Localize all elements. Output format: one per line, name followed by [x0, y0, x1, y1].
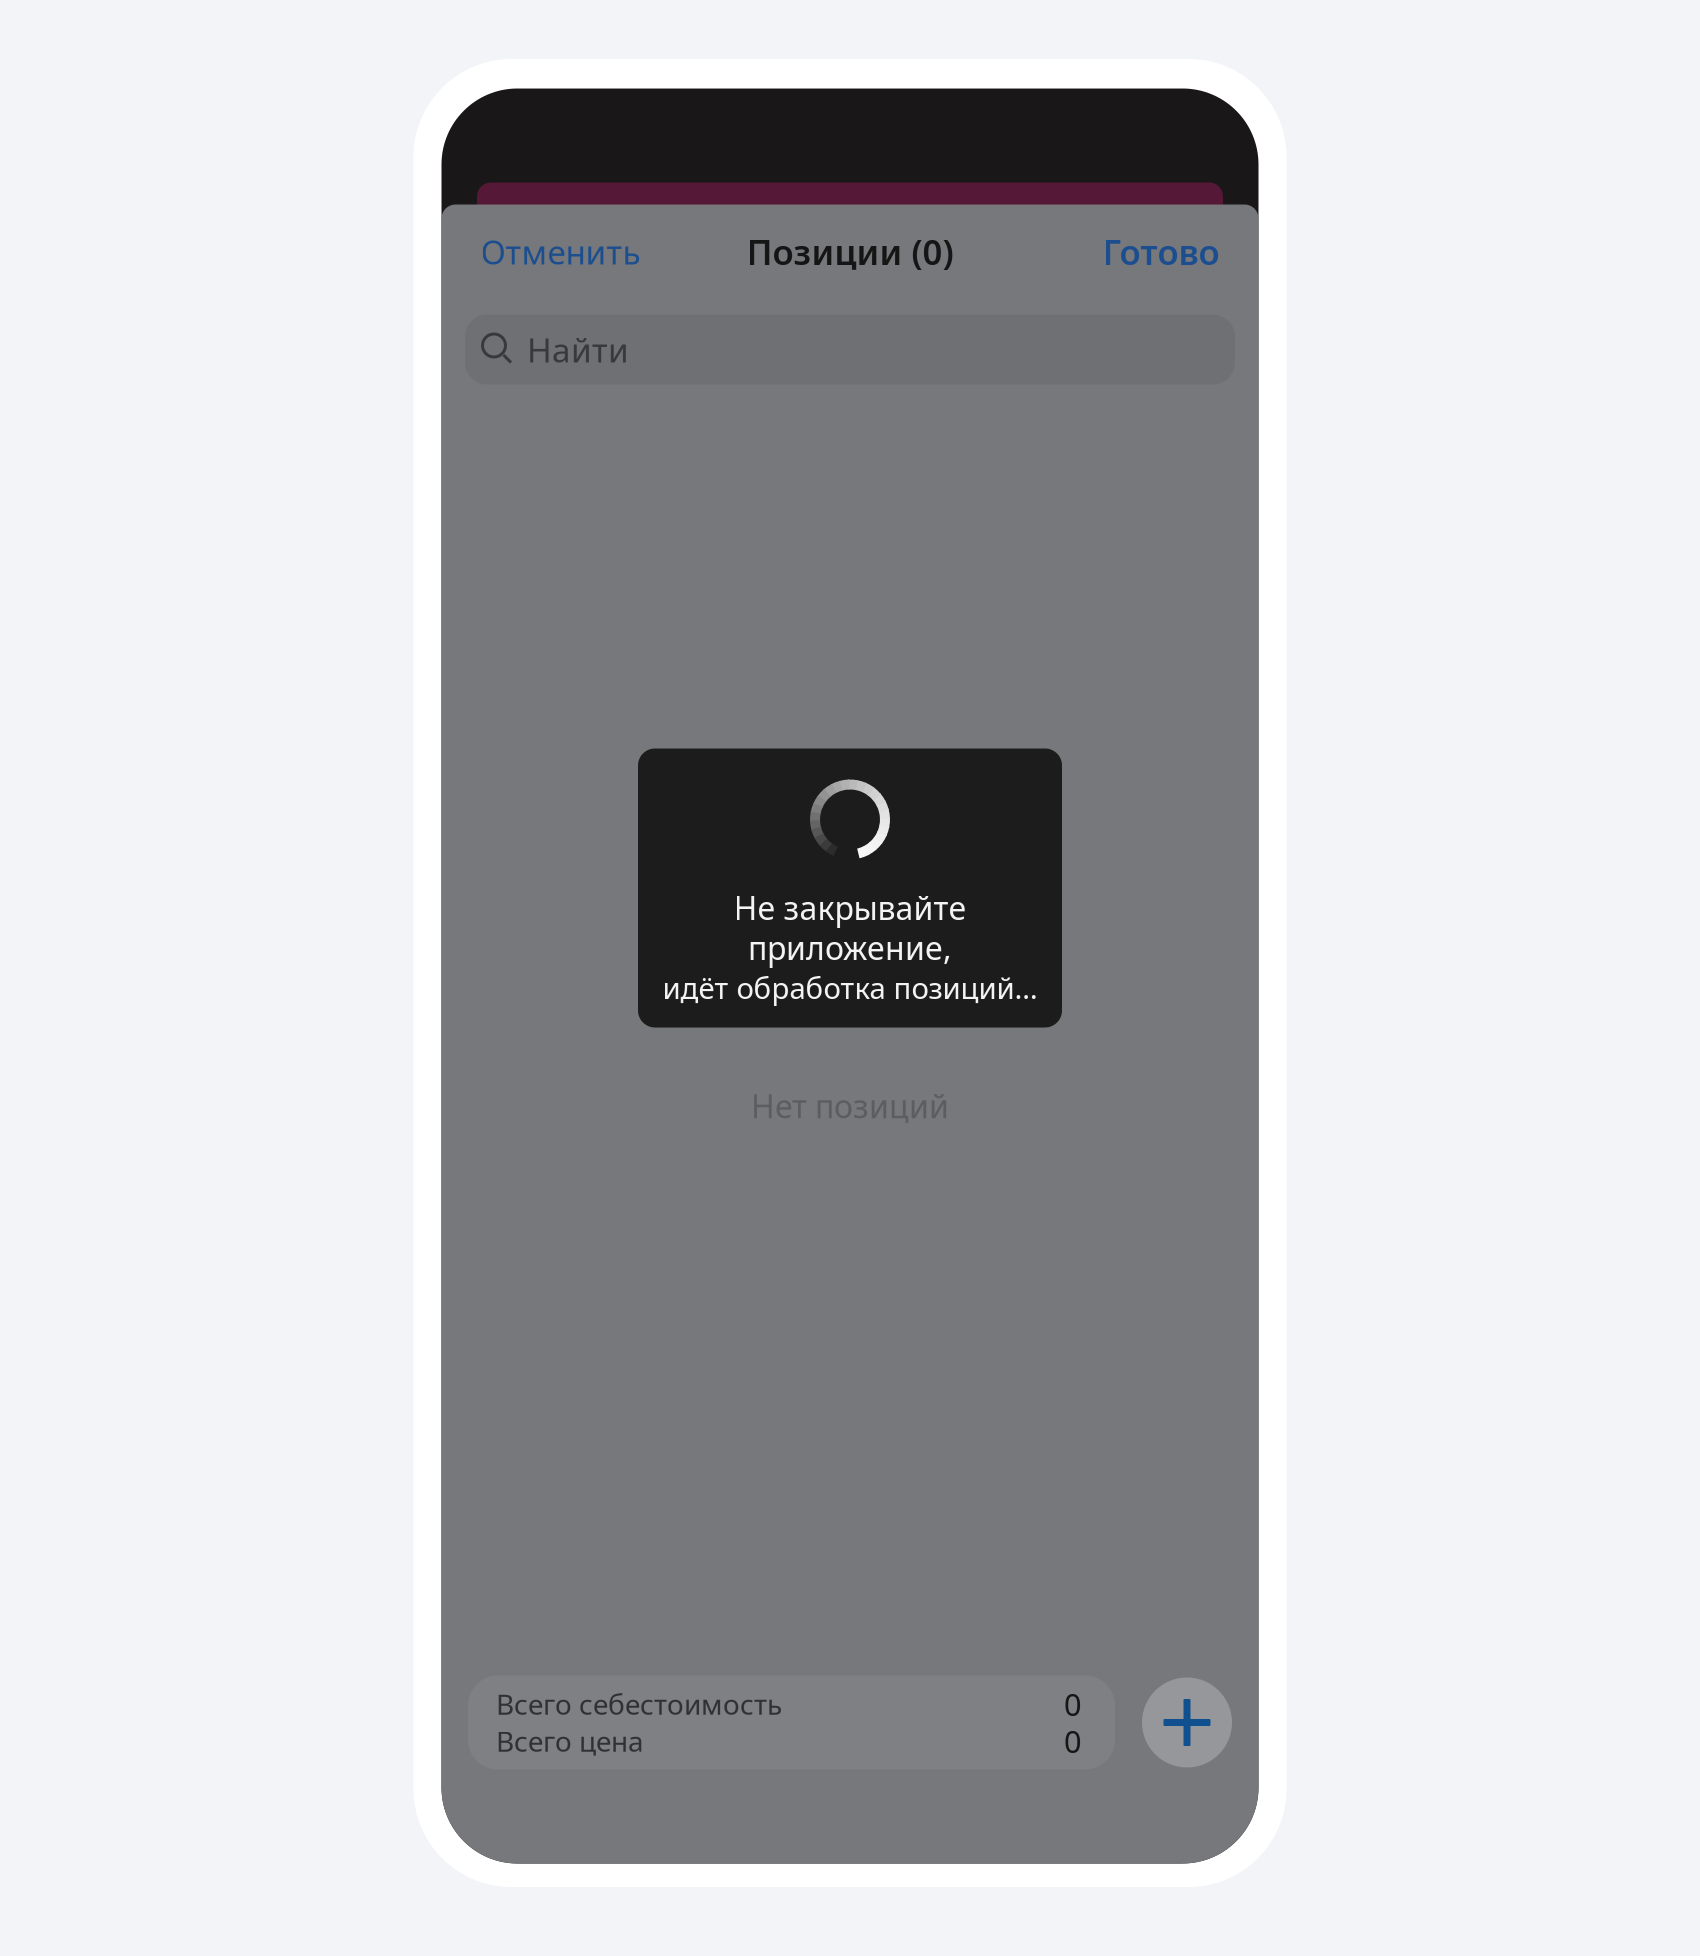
- staticText: 0: [1064, 1721, 1082, 1761]
- button[interactable]: Готово: [1102, 228, 1219, 274]
- staticText: Готово: [1102, 228, 1219, 274]
- staticText: 0: [1064, 1684, 1082, 1724]
- button[interactable]: Отменить: [480, 229, 640, 274]
- button[interactable]: Добавить позицию: [1142, 1677, 1232, 1767]
- staticText: приложение,: [748, 926, 952, 969]
- staticText: Не закрывайте: [733, 886, 966, 929]
- staticText: идёт обработка позиций…: [662, 968, 1037, 1007]
- staticText: Нет позиций: [751, 1084, 949, 1127]
- staticText: Найти: [527, 327, 629, 372]
- staticText: Позиции (0): [746, 228, 953, 274]
- staticText: Всего цена: [496, 1722, 644, 1760]
- button[interactable]: Найти: [465, 314, 1235, 384]
- staticText: Всего себестоимость: [496, 1685, 782, 1723]
- staticText: Отменить: [480, 229, 640, 274]
